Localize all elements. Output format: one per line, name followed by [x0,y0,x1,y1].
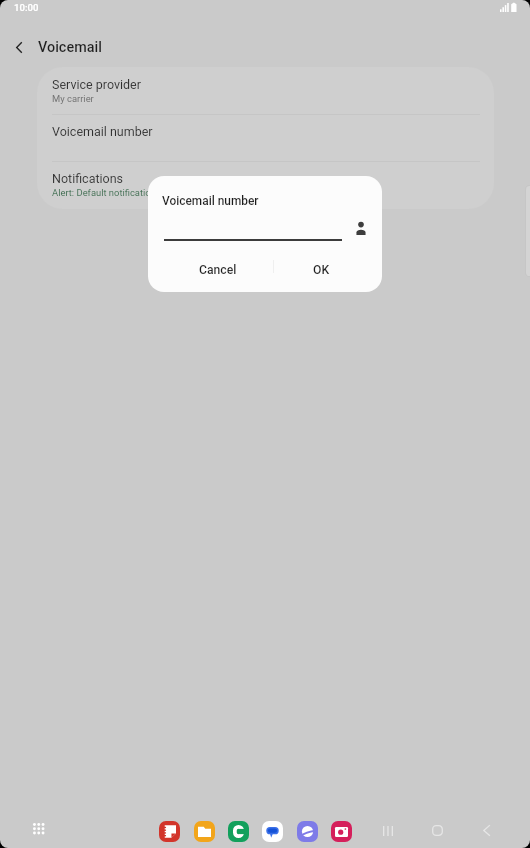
staticText: OK [313,263,330,277]
button[interactable]: Home [423,816,452,845]
button[interactable]: Messages [262,821,283,842]
button[interactable]: My Files [194,821,215,842]
button[interactable]: Service provider [37,67,494,114]
button[interactable]: Back [472,816,501,845]
staticText: Alert: Default notification sound [52,187,185,198]
button[interactable]: Internet [297,821,318,842]
button[interactable]: Camera [331,821,352,842]
button[interactable]: Apps [26,816,51,841]
staticText: Notifications [52,171,124,186]
button[interactable]: Navigate up [3,31,35,63]
staticText: Voicemail number [52,124,153,139]
button[interactable]: Cancel [162,253,274,287]
button[interactable]: Recent apps [373,816,402,845]
button[interactable]: Notifications [37,161,494,209]
staticText: Voicemail [38,39,102,56]
staticText: Cancel [199,263,237,277]
button[interactable]: Samsung Notes [159,821,180,842]
button[interactable]: Phone [228,821,249,842]
staticText: Voicemail number [162,194,259,208]
button[interactable]: OK [275,253,367,287]
staticText: My carrier [52,93,94,104]
staticText: Service provider [52,77,141,92]
button[interactable]: Select contact [348,215,374,241]
staticText: 10:00 [14,2,39,13]
button[interactable]: Voicemail number [37,114,494,161]
